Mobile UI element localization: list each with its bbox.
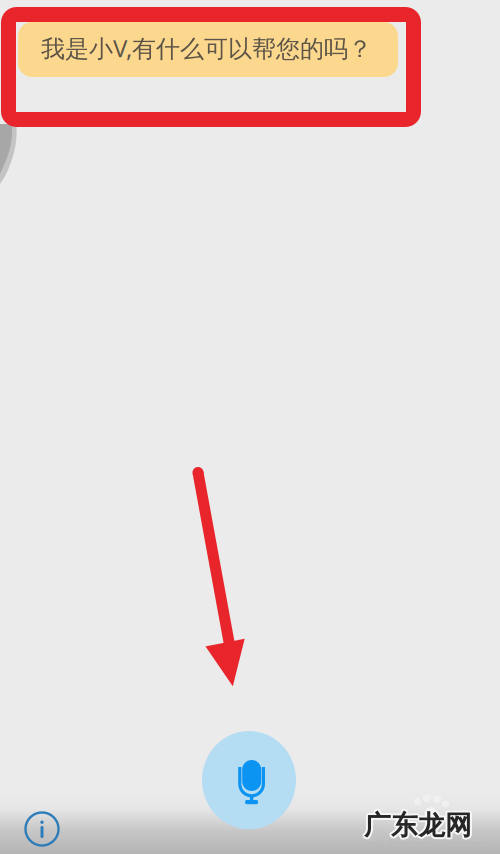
button[interactable]: Voice input: [202, 731, 297, 829]
staticText: 广东龙网: [362, 810, 470, 843]
staticText: 广东龙网: [364, 807, 472, 840]
button[interactable]: Info: [25, 812, 59, 846]
staticText: 广东龙网: [366, 809, 474, 842]
staticText: gd-longwang.com: [368, 836, 485, 854]
staticText: 我是小V,有什么可以帮您的吗？: [41, 32, 372, 64]
staticText: 广东龙网: [362, 807, 470, 840]
staticText: 广东龙网: [362, 809, 470, 842]
staticText: 广东龙网: [365, 807, 473, 840]
staticText: 广东龙网: [364, 811, 472, 844]
staticText: 广东龙网: [365, 810, 473, 843]
staticText: 广东龙网: [364, 809, 472, 842]
